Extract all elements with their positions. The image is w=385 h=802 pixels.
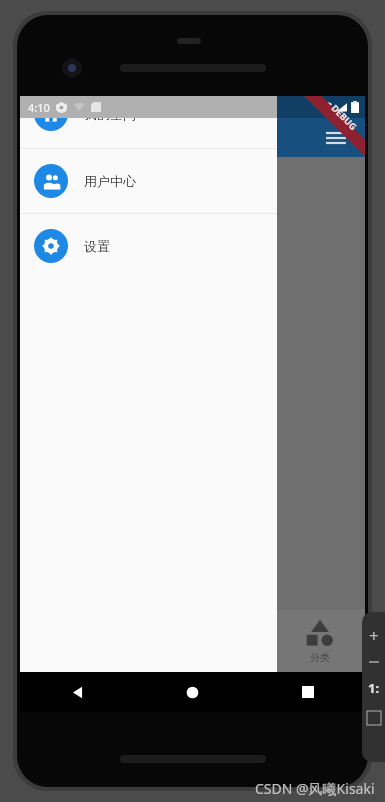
staticText: 1:: [368, 679, 380, 697]
button[interactable]: 分类: [275, 610, 365, 672]
staticText: +: [369, 624, 379, 647]
button[interactable]: Recent apps: [250, 672, 365, 712]
button[interactable]: Home: [135, 672, 250, 712]
staticText: DEBUG: [329, 102, 360, 132]
staticText: 分类: [310, 651, 330, 664]
button[interactable]: Back: [20, 672, 135, 712]
staticText: CSDN @风曦Kisaki: [255, 779, 375, 798]
button[interactable]: Open navigation menu: [319, 121, 353, 155]
staticText: 设置: [84, 238, 110, 254]
button[interactable]: 我的空间: [20, 96, 277, 148]
button[interactable]: 用户中心: [20, 149, 277, 213]
staticText: 4:10: [28, 100, 50, 115]
button[interactable]: 设置: [20, 214, 277, 278]
staticText: 用户中心: [84, 173, 136, 189]
staticText: 我的空间: [84, 106, 136, 122]
